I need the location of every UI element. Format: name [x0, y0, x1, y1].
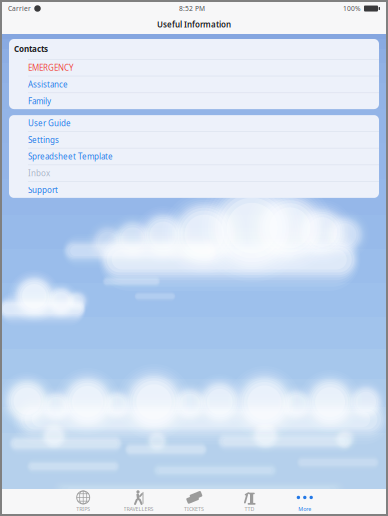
- staticText: 100%: [343, 4, 361, 13]
- button[interactable]: Settings: [9, 132, 379, 148]
- button[interactable]: EMERGENCY: [9, 60, 379, 76]
- staticText: Contacts: [14, 44, 48, 54]
- staticText: User Guide: [28, 118, 71, 128]
- staticText: Support: [28, 185, 58, 195]
- staticText: Inbox: [28, 168, 50, 178]
- staticText: 8:52 PM: [179, 4, 205, 13]
- staticText: EMERGENCY: [28, 62, 74, 73]
- staticText: TRIPS: [76, 505, 90, 513]
- button[interactable]: TRAVELLERS: [111, 489, 166, 514]
- staticText: TRAVELLERS: [124, 505, 154, 513]
- staticText: Useful Information: [157, 19, 231, 30]
- staticText: TTD: [244, 505, 254, 513]
- staticText: Settings: [28, 134, 59, 145]
- button[interactable]: TRIPS: [55, 489, 111, 514]
- button[interactable]: TTD: [222, 489, 277, 514]
- button[interactable]: TICKETS: [166, 489, 222, 514]
- button[interactable]: Inbox: [9, 165, 379, 181]
- staticText: Assistance: [28, 79, 68, 90]
- staticText: TICKETS: [184, 505, 204, 513]
- staticText: Carrier: [8, 4, 31, 13]
- button[interactable]: More: [277, 489, 332, 514]
- button[interactable]: Assistance: [9, 76, 379, 92]
- staticText: More: [298, 505, 311, 513]
- staticText: Family: [28, 96, 51, 106]
- staticText: Spreadsheet Template: [28, 151, 113, 162]
- button[interactable]: Family: [9, 93, 379, 109]
- button[interactable]: User Guide: [9, 115, 379, 131]
- button[interactable]: Support: [9, 182, 379, 198]
- button[interactable]: Spreadsheet Template: [9, 148, 379, 164]
